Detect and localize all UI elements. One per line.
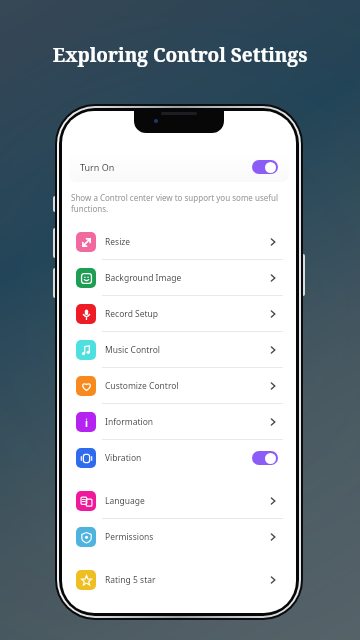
button[interactable]: Permissions	[69, 519, 289, 554]
button[interactable]: Record Setup	[69, 296, 289, 331]
staticText: Information	[105, 416, 154, 428]
staticText: Customize Control	[105, 380, 179, 392]
other: Open Permissions	[268, 532, 278, 542]
button[interactable]: Toggle	[252, 160, 278, 174]
other: Open Information	[268, 417, 278, 427]
staticText: Exploring Control Settings	[0, 42, 360, 68]
staticText: Turn On	[80, 161, 115, 173]
staticText: Record Setup	[105, 308, 159, 320]
button[interactable]: Language	[69, 483, 289, 518]
other: Open Resize	[268, 237, 278, 247]
other: Open Rating 5 star	[268, 575, 278, 585]
other: Open Music Control	[268, 345, 278, 355]
button[interactable]: Background Image	[69, 260, 289, 295]
other: Open Customize Control	[268, 381, 278, 391]
staticText: Permissions	[105, 531, 154, 543]
button[interactable]: Toggle	[252, 451, 278, 465]
staticText: Music Control	[105, 344, 161, 356]
staticText: Show a Control center view to support yo…	[71, 192, 287, 214]
button[interactable]: Turn On	[69, 152, 289, 182]
button[interactable]: Vibration	[69, 440, 289, 475]
staticText: Background Image	[105, 272, 182, 284]
other: Open Language	[268, 496, 278, 506]
staticText: Vibration	[105, 452, 142, 464]
staticText: Rating 5 star	[105, 574, 156, 586]
staticText: Resize	[105, 236, 131, 248]
button[interactable]: Information	[69, 404, 289, 439]
button[interactable]: Resize	[69, 224, 289, 259]
button[interactable]: Rating 5 star	[69, 562, 289, 597]
button[interactable]: Music Control	[69, 332, 289, 367]
staticText: Language	[105, 495, 145, 507]
other: Open Background Image	[268, 273, 278, 283]
button[interactable]: Customize Control	[69, 368, 289, 403]
other: Open Record Setup	[268, 309, 278, 319]
